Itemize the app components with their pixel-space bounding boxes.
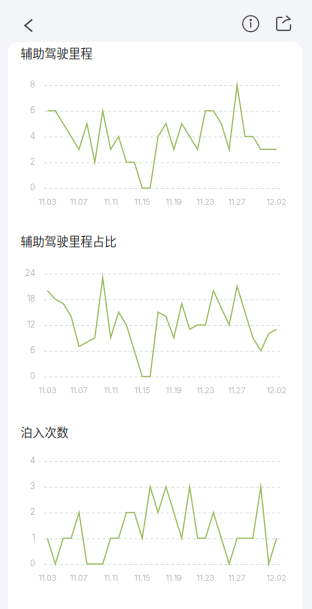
staticText: 11.07 — [70, 573, 88, 583]
staticText: 11.03 — [38, 197, 56, 207]
staticText: 4 — [30, 455, 35, 465]
staticText: 11.23 — [196, 385, 214, 395]
staticText: 11.15 — [134, 197, 150, 207]
staticText: 11.27 — [228, 385, 246, 395]
staticText: 6 — [30, 345, 35, 355]
staticText: 2 — [30, 157, 35, 167]
staticText: 11.27 — [228, 573, 246, 583]
staticText: 12.02 — [267, 573, 287, 583]
staticText: 11.23 — [196, 197, 214, 207]
staticText: 11.23 — [196, 573, 214, 583]
staticText: 11.11 — [104, 385, 118, 395]
button[interactable]: Info — [235, 8, 267, 40]
staticText: 11.07 — [70, 385, 88, 395]
staticText: 辅助驾驶里程 — [20, 44, 92, 62]
staticText: 3 — [30, 481, 35, 491]
staticText: 11.15 — [134, 385, 150, 395]
staticText: 0 — [30, 371, 35, 381]
staticText: 11.03 — [38, 385, 56, 395]
staticText: 11.19 — [166, 385, 182, 395]
staticText: 11.19 — [166, 573, 182, 583]
button[interactable]: Back — [11, 7, 47, 43]
staticText: 12.02 — [267, 197, 287, 207]
staticText: 12.02 — [267, 385, 287, 395]
staticText: 1 — [32, 533, 35, 543]
staticText: 4 — [30, 131, 35, 141]
staticText: 11.03 — [38, 573, 56, 583]
staticText: 24 — [25, 268, 35, 278]
staticText: 6 — [30, 105, 35, 115]
staticText: 11.11 — [104, 573, 118, 583]
staticText: 0 — [30, 182, 35, 192]
staticText: 8 — [30, 79, 35, 89]
staticText: 11.19 — [166, 197, 182, 207]
staticText: 0 — [30, 558, 35, 568]
staticText: 2 — [30, 507, 35, 517]
staticText: 11.15 — [134, 573, 150, 583]
staticText: 11.07 — [70, 197, 88, 207]
staticText: 泊入次数 — [20, 423, 68, 441]
staticText: 11.27 — [228, 197, 246, 207]
staticText: 12 — [27, 319, 35, 329]
button[interactable]: Share — [268, 7, 300, 39]
staticText: 辅助驾驶里程占比 — [20, 232, 116, 250]
staticText: 18 — [27, 294, 35, 304]
staticText: 11.11 — [104, 197, 118, 207]
